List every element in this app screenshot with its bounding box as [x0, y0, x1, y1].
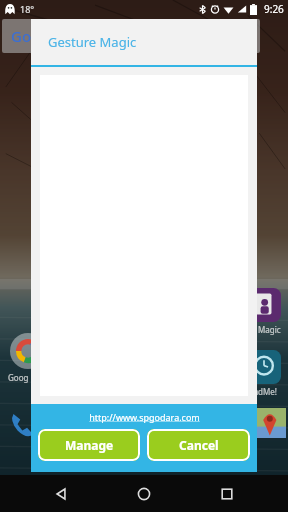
- staticText: http://www.spgodara.com: [89, 411, 200, 423]
- button[interactable]: http://www.spgodara.com: [83, 409, 206, 425]
- staticText: Manage: [65, 437, 114, 453]
- staticText: 9:26: [264, 2, 284, 16]
- button[interactable]: Google folder: [10, 333, 46, 369]
- staticText: Goog: [8, 372, 29, 383]
- button[interactable]: Recent apps: [205, 475, 249, 512]
- staticText: Cancel: [179, 437, 219, 453]
- button[interactable]: Back: [39, 475, 83, 512]
- staticText: Go: [11, 26, 32, 46]
- button[interactable]: re Magic: [244, 288, 284, 335]
- button[interactable]: Cancel: [147, 429, 250, 461]
- button[interactable]: Google search: [2, 19, 260, 53]
- button[interactable]: Manage: [38, 429, 140, 461]
- other: Phone: [6, 408, 40, 442]
- staticText: indMe!: [251, 386, 277, 397]
- other: Maps: [256, 408, 286, 438]
- button[interactable]: indMe!: [244, 350, 284, 397]
- button[interactable]: Home: [122, 475, 166, 512]
- staticText: re Magic: [248, 324, 281, 335]
- staticText: Gesture Magic: [48, 33, 137, 51]
- staticText: 18°: [20, 3, 35, 15]
